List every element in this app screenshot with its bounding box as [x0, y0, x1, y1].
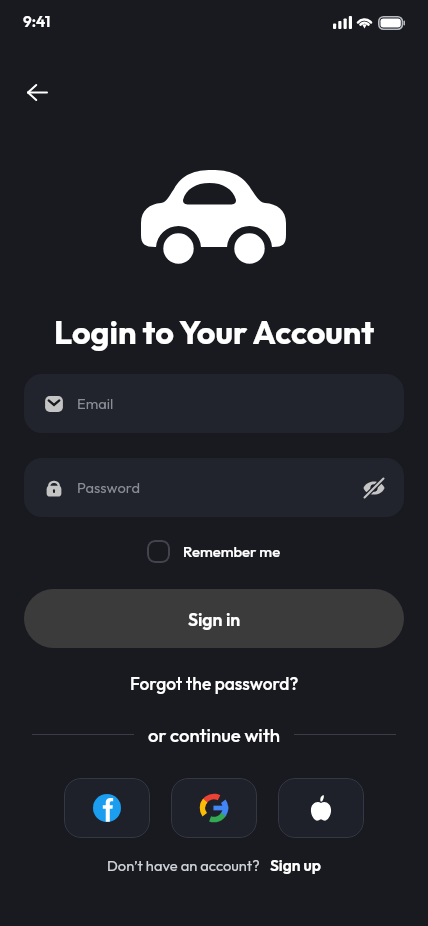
button[interactable]: Sign in: [24, 589, 404, 648]
button[interactable]: Sign in with Google: [171, 778, 257, 838]
button[interactable]: Password: [24, 458, 404, 517]
button[interactable]: Sign in with Apple: [278, 778, 364, 838]
staticText: Login to Your Account: [54, 312, 375, 353]
staticText: 9:41: [23, 12, 51, 31]
staticText: Sign in: [188, 608, 241, 630]
button[interactable]: Sign up: [270, 855, 321, 875]
button[interactable]: Show password: [360, 474, 388, 502]
button[interactable]: Email: [24, 374, 404, 433]
button[interactable]: Sign in with Facebook: [64, 778, 150, 838]
button[interactable]: Back: [17, 72, 57, 112]
staticText: Forgot the password?: [130, 673, 299, 695]
staticText: or continue with: [148, 723, 280, 746]
staticText: Don’t have an account?: [107, 856, 260, 875]
staticText: Password: [77, 478, 140, 497]
button[interactable]: Remember me: [147, 540, 281, 563]
staticText: Sign up: [270, 855, 321, 875]
staticText: Email: [77, 394, 114, 413]
staticText: Remember me: [183, 542, 281, 561]
button[interactable]: Forgot the password?: [126, 669, 303, 699]
